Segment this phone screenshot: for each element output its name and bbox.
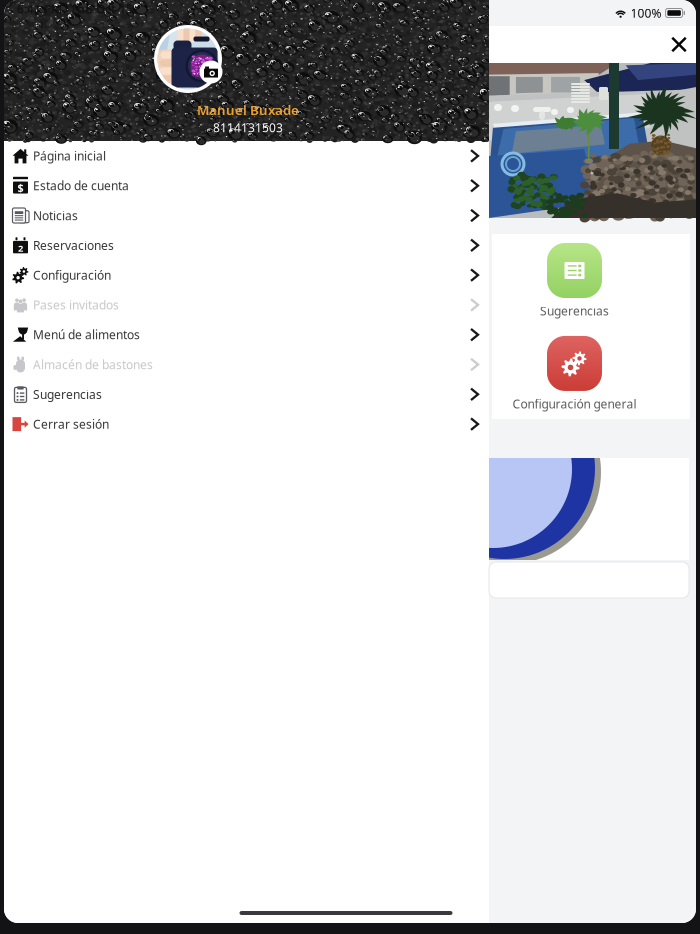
staticText: 100%	[631, 5, 662, 21]
button[interactable]: Cerrar sesión	[4, 409, 489, 439]
button[interactable]: Pases invitados	[4, 290, 489, 320]
staticText: Estado de cuenta	[33, 178, 129, 194]
staticText: Página inicial	[33, 148, 106, 164]
staticText: Configuración general	[512, 396, 636, 412]
button[interactable]: Almacén de bastones	[4, 350, 489, 379]
staticText: Configuración	[33, 267, 111, 283]
staticText: Pases invitados	[33, 297, 119, 313]
staticText: Almacén de bastones	[33, 356, 153, 372]
button[interactable]: Close	[662, 26, 696, 63]
staticText: Thu Oct 15	[70, 1, 133, 17]
staticText: Sugerencias	[540, 303, 609, 319]
staticText: Menú de alimentos	[33, 327, 140, 343]
button[interactable]: Sugerencias	[4, 379, 489, 409]
staticText: 8114131503	[213, 120, 283, 136]
button[interactable]: 2	[4, 230, 489, 260]
button[interactable]: Página inicial	[4, 141, 489, 171]
button[interactable]: Menú de alimentos	[4, 320, 489, 350]
staticText: Cerrar sesión	[33, 416, 109, 432]
staticText: 2	[18, 242, 23, 254]
staticText: Manuel Buxade	[197, 101, 299, 119]
button[interactable]: Configuración general	[512, 336, 636, 412]
staticText: $	[17, 180, 23, 195]
staticText: 6:41 PM	[17, 1, 62, 17]
staticText: Sugerencias	[33, 386, 102, 402]
button[interactable]: Configuración	[4, 260, 489, 290]
button[interactable]: $	[4, 171, 489, 201]
button[interactable]: Sugerencias	[540, 243, 609, 319]
staticText: Noticias	[33, 207, 78, 223]
button[interactable]: Noticias	[4, 201, 489, 230]
staticText: Reservaciones	[33, 237, 114, 253]
